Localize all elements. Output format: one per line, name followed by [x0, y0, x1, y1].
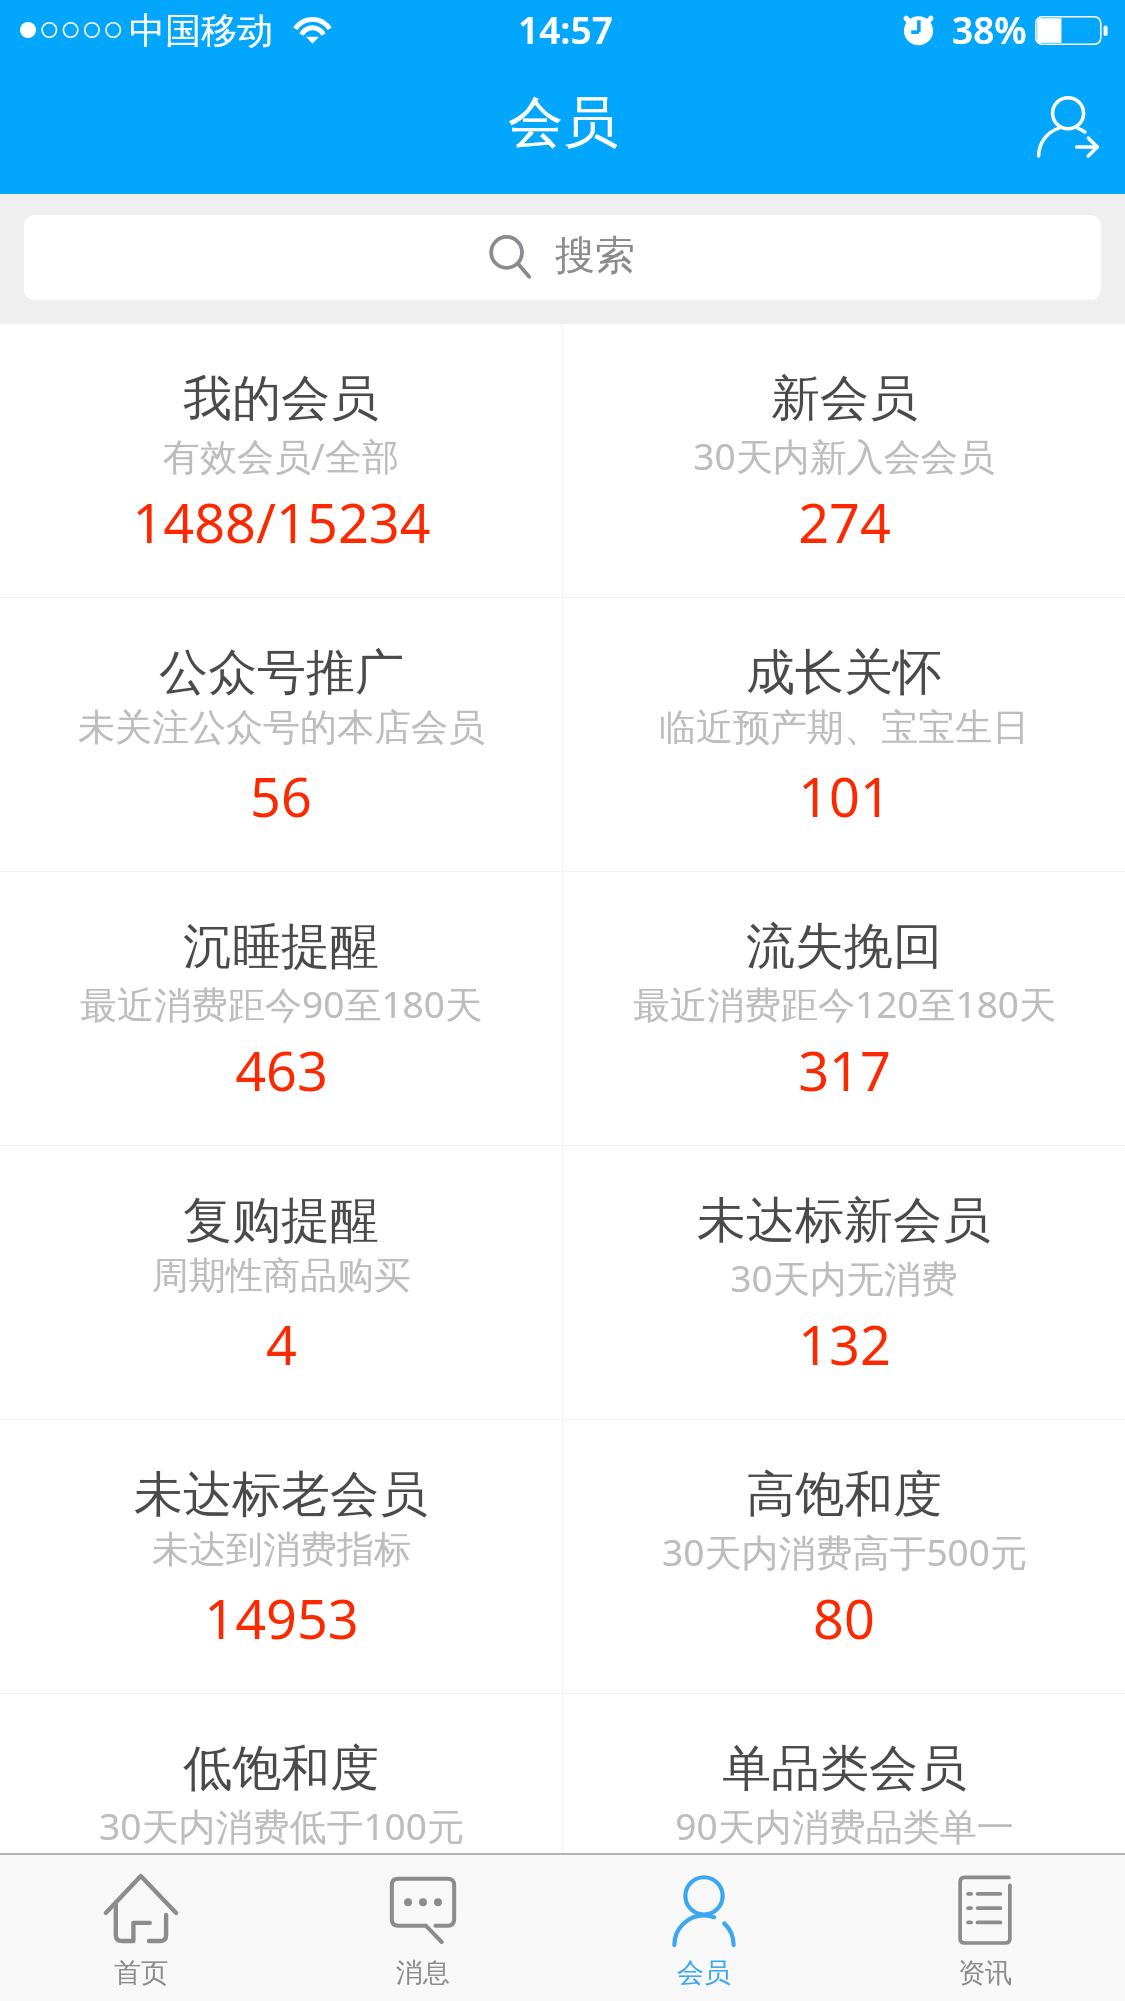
button[interactable]: 会员 [563, 1855, 844, 2001]
staticText: 有效会员/全部 [163, 430, 399, 481]
staticText: 132 [798, 1307, 891, 1381]
staticText: 首页 [114, 1956, 168, 1990]
staticText: 低饱和度 [183, 1738, 379, 1800]
staticText: 1488/15234 [132, 485, 431, 559]
staticText: 沉睡提醒 [183, 916, 379, 978]
button[interactable]: 低饱和度 [0, 1694, 562, 1853]
button[interactable]: 我的会员 [0, 324, 562, 597]
button[interactable]: 资讯 [844, 1855, 1125, 2001]
button[interactable]: 未达标老会员 [0, 1420, 562, 1693]
staticText: 14953 [204, 1581, 359, 1655]
button[interactable]: 高饱和度 [563, 1420, 1125, 1693]
staticText: 消息 [396, 1956, 450, 1990]
staticText: 未关注公众号的本店会员 [78, 704, 485, 751]
staticText: 搜索 [555, 230, 635, 280]
staticText: 我的会员 [183, 368, 379, 430]
button[interactable]: 未达标新会员 [563, 1146, 1125, 1419]
button[interactable]: 新会员 [563, 324, 1125, 597]
button[interactable]: 复购提醒 [0, 1146, 562, 1419]
button[interactable]: 成长关怀 [563, 598, 1125, 871]
staticText: 56 [250, 759, 312, 833]
staticText: 公众号推广 [159, 642, 404, 704]
staticText: 未达标新会员 [697, 1190, 991, 1252]
staticText: 80 [813, 1581, 875, 1655]
button[interactable]: 沉睡提醒 [0, 872, 562, 1145]
button[interactable]: 单品类会员 [563, 1694, 1125, 1853]
staticText: 新会员 [771, 368, 918, 430]
staticText: 317 [798, 1033, 891, 1107]
staticText: 最近消费距今120至180天 [633, 978, 1056, 1029]
staticText: 30天内消费低于100元 [99, 1800, 464, 1851]
staticText: 90天内消费品类单一 [675, 1800, 1014, 1851]
staticText: 成长关怀 [746, 642, 942, 704]
staticText: 274 [798, 485, 891, 559]
staticText: 30天内消费高于500元 [662, 1526, 1027, 1577]
staticText: 未达到消费指标 [152, 1526, 411, 1573]
button[interactable]: Add member [1008, 81, 1125, 171]
staticText: 周期性商品购买 [152, 1252, 411, 1299]
staticText: 38% [952, 4, 1027, 54]
staticText: 30天内新入会会员 [693, 430, 995, 481]
staticText: 未达标老会员 [134, 1464, 428, 1526]
button[interactable]: 搜索 [24, 215, 1101, 300]
staticText: 463 [235, 1033, 328, 1107]
staticText: 高饱和度 [746, 1464, 942, 1526]
staticText: 中国移动 [129, 8, 273, 53]
button[interactable]: 流失挽回 [563, 872, 1125, 1145]
staticText: 单品类会员 [722, 1738, 967, 1800]
staticText: 30天内无消费 [730, 1252, 958, 1303]
staticText: 4 [266, 1307, 297, 1381]
staticText: 会员 [508, 88, 618, 157]
staticText: 流失挽回 [746, 916, 942, 978]
staticText: 101 [798, 759, 891, 833]
staticText: 临近预产期、宝宝生日 [659, 704, 1029, 751]
staticText: 14:57 [518, 4, 613, 54]
button[interactable]: 消息 [282, 1855, 563, 2001]
staticText: 复购提醒 [183, 1190, 379, 1252]
button[interactable]: 公众号推广 [0, 598, 562, 871]
staticText: 资讯 [958, 1956, 1012, 1990]
staticText: 最近消费距今90至180天 [80, 978, 482, 1029]
button[interactable]: 首页 [0, 1855, 282, 2001]
staticText: 会员 [677, 1956, 731, 1990]
